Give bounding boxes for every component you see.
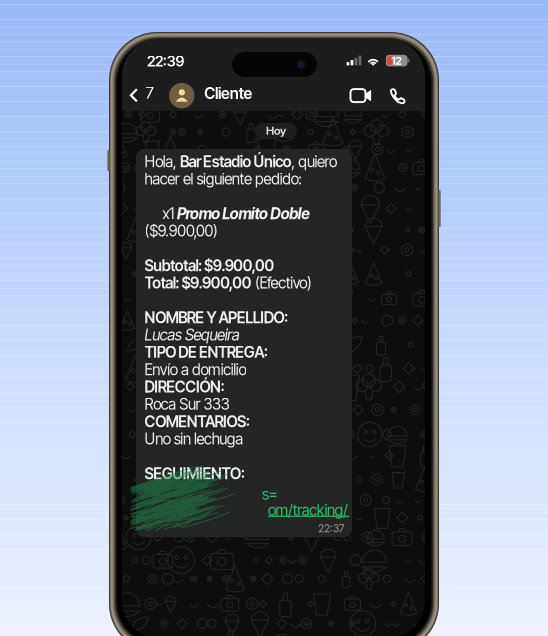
staticText: Roca Sur 333 <box>145 395 230 413</box>
button[interactable]: Video call <box>340 80 381 111</box>
staticText: 22:37 <box>318 522 344 535</box>
staticText: DIRECCIÓN: <box>145 378 224 396</box>
staticText: Total: $9.900,00 (Efectivo) <box>145 274 312 292</box>
staticText: Uno sin lechuga <box>145 430 243 448</box>
staticText: SEGUIMIENTO: <box>145 464 245 483</box>
staticText: Envío a domicilio <box>145 360 246 379</box>
staticText: s= <box>262 485 277 503</box>
staticText: hacer el siguiente pedido: <box>145 170 302 188</box>
staticText: x1 Promo Lomito Doble <box>145 205 310 223</box>
staticText: Subtotal: $9.900,00 <box>145 256 274 275</box>
button[interactable]: Cliente <box>169 80 309 111</box>
staticText: Hoy <box>266 124 286 137</box>
staticText: TIPO DE ENTREGA: <box>145 343 268 361</box>
staticText: Cliente <box>204 84 253 103</box>
staticText: ($9.900,00) <box>145 222 218 240</box>
staticText: 12 <box>391 54 402 67</box>
staticText: NOMBRE Y APELLIDO: <box>145 308 288 327</box>
staticText: 22:39 <box>147 52 185 70</box>
staticText: 7 <box>146 83 154 102</box>
staticText: Lucas Sequeira <box>145 326 240 344</box>
staticText: om/tracking/ <box>268 501 348 519</box>
button[interactable]: Voice call <box>377 80 418 111</box>
staticText: COMENTARIOS: <box>145 412 250 431</box>
button[interactable]: Back, 7 unread <box>122 80 162 111</box>
staticText: Hola, Bar Estadio Único, quiero <box>145 153 337 171</box>
